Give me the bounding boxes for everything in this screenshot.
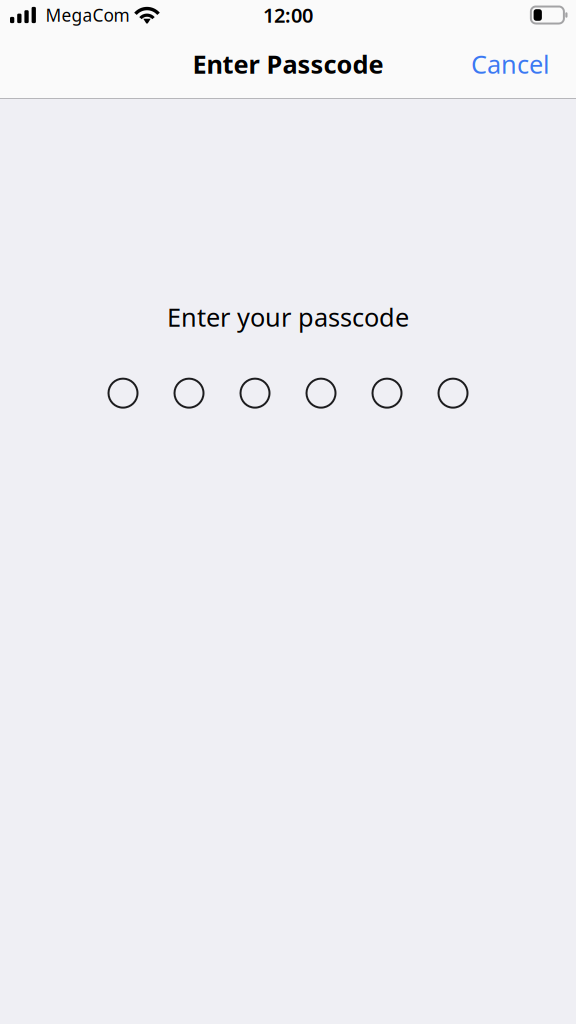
button[interactable]: Passcode, 6 digits, empty — [84, 367, 491, 420]
staticText: MegaCom — [45, 3, 129, 26]
staticText: 12:00 — [263, 2, 313, 28]
staticText: Cancel — [471, 47, 550, 81]
staticText: Enter Passcode — [192, 47, 383, 81]
button[interactable]: Cancel — [459, 36, 562, 92]
staticText: Enter your passcode — [167, 300, 409, 334]
